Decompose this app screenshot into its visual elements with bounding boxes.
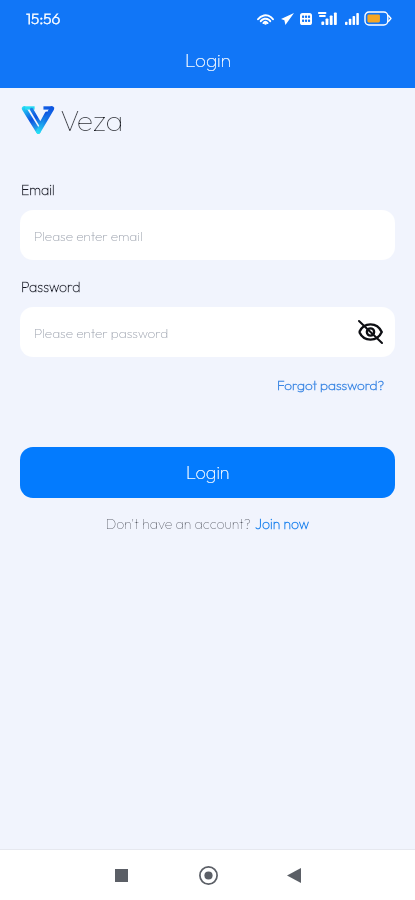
staticText: Forgot password? <box>277 376 385 393</box>
staticText: Join now <box>255 515 309 533</box>
staticText: Password <box>21 278 81 296</box>
staticText: Veza <box>60 101 124 139</box>
button[interactable]: Forgot password? <box>277 376 385 393</box>
button[interactable]: Login <box>20 447 395 498</box>
staticText: Please enter password <box>34 324 169 341</box>
staticText: Please enter email <box>34 227 143 244</box>
staticText: Login <box>186 461 230 484</box>
staticText: Login <box>185 48 231 72</box>
button[interactable]: Toggle password visibility <box>353 315 387 349</box>
staticText: Email <box>21 181 55 199</box>
button[interactable]: Home <box>191 858 225 892</box>
button[interactable]: Please enter email <box>20 210 395 260</box>
button[interactable]: Please enter password <box>20 307 395 357</box>
button[interactable]: Back <box>277 858 311 892</box>
button[interactable]: Recent apps <box>104 858 138 892</box>
staticText: 15:56 <box>26 8 61 28</box>
button[interactable]: Join now <box>255 515 309 533</box>
staticText: Don't have an account? <box>106 515 255 533</box>
